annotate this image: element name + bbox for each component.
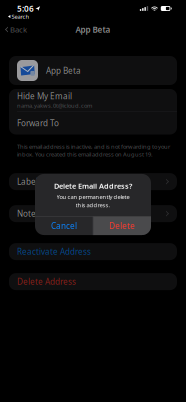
staticText: Note xyxy=(17,208,36,219)
staticText: nama.yakws.0t@icloud.com xyxy=(17,102,92,109)
staticText: Label xyxy=(17,176,38,187)
staticText: Delete Email Address? xyxy=(54,181,132,191)
button[interactable]: Delete xyxy=(93,217,151,235)
button[interactable]: Note xyxy=(0,205,186,222)
button[interactable]: Label xyxy=(0,173,186,190)
staticText: This email address is inactive, and is n… xyxy=(17,142,170,158)
button[interactable]: Delete Address xyxy=(0,273,186,290)
staticText: Delete xyxy=(109,220,135,231)
button[interactable]: Search xyxy=(8,13,30,20)
button[interactable]: Cancel xyxy=(35,217,93,235)
staticText: 5:06 xyxy=(17,3,34,14)
staticText: Hide My Email xyxy=(17,91,72,102)
staticText: Reactivate Address xyxy=(17,246,91,257)
staticText: Cancel xyxy=(51,220,77,231)
staticText: Delete Address xyxy=(17,276,76,287)
staticText: App Beta xyxy=(75,24,110,35)
staticText: App Beta xyxy=(46,65,81,76)
button[interactable]: Reactivate Address xyxy=(0,243,186,260)
staticText: You can permanently delete xyxy=(56,193,129,201)
staticText: Forward To xyxy=(17,117,59,129)
staticText: Back xyxy=(10,24,27,35)
button[interactable]: Back xyxy=(0,20,27,39)
staticText: Search xyxy=(12,13,30,20)
staticText: this address. xyxy=(75,201,110,209)
